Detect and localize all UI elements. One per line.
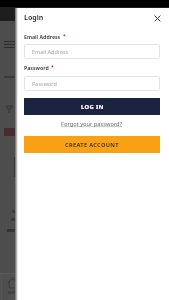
- button[interactable]: Email Address: [24, 44, 160, 59]
- staticText: Password: [32, 80, 57, 87]
- staticText: *: [63, 33, 66, 40]
- staticText: Forgot your password?: [61, 120, 123, 128]
- button[interactable]: CREATE ACCOUNT: [24, 136, 160, 153]
- staticText: Email Address: [24, 33, 61, 40]
- button[interactable]: Close: [149, 10, 165, 26]
- staticText: Login: [24, 13, 44, 23]
- button[interactable]: Forgot your password?: [24, 118, 160, 129]
- staticText: LOG IN: [81, 103, 104, 111]
- button[interactable]: Password: [24, 76, 160, 91]
- staticText: Email Address: [32, 48, 69, 55]
- staticText: CREATE ACCOUNT: [65, 141, 119, 149]
- staticText: Password: [24, 64, 49, 71]
- button[interactable]: LOG IN: [24, 98, 160, 115]
- staticText: *: [51, 64, 54, 71]
